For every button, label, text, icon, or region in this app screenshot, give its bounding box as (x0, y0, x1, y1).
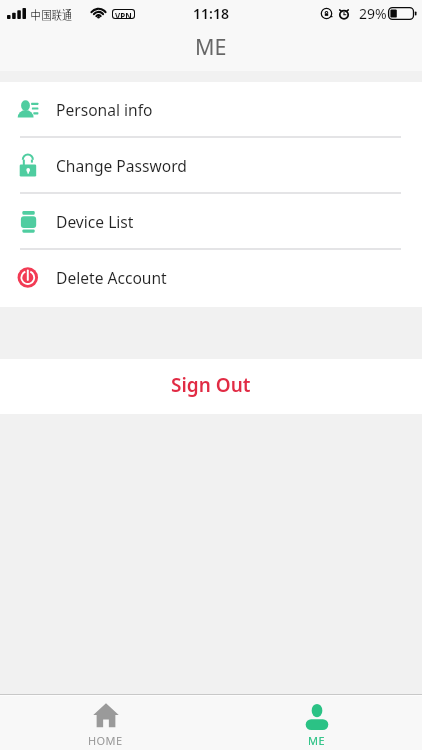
button[interactable]: Sign Out (0, 359, 422, 414)
button[interactable]: HOME (0, 696, 211, 750)
staticText: 29% (359, 4, 387, 23)
staticText: Delete Account (56, 267, 167, 288)
button[interactable]: Change Password (0, 138, 422, 194)
staticText: 中国联通 (31, 7, 72, 20)
staticText: 11:18 (193, 4, 229, 23)
staticText: Personal info (56, 99, 153, 120)
button[interactable]: ME (211, 696, 422, 750)
staticText: ME (308, 733, 325, 748)
staticText: ME (195, 32, 227, 61)
button[interactable]: Device List (0, 194, 422, 250)
staticText: Sign Out (171, 372, 251, 398)
staticText: HOME (88, 733, 123, 748)
button[interactable]: Personal info (0, 82, 422, 138)
staticText: Device List (56, 211, 134, 232)
staticText: VPN (115, 10, 132, 18)
staticText: Change Password (56, 155, 187, 176)
button[interactable]: Delete Account (0, 250, 422, 304)
